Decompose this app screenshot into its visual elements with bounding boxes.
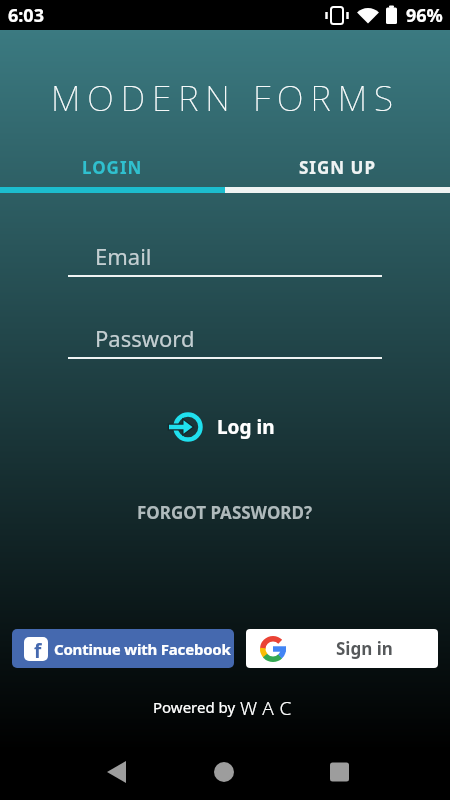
button[interactable]: Sign in xyxy=(246,629,438,668)
staticText: FORGOT PASSWORD? xyxy=(137,501,313,524)
button[interactable]: Log in xyxy=(165,405,275,449)
staticText: Password xyxy=(95,323,195,353)
button[interactable]: f xyxy=(12,629,234,668)
button[interactable]: Email xyxy=(68,241,382,277)
staticText: 96% xyxy=(406,3,443,28)
staticText: SIGN UP xyxy=(299,156,376,179)
button[interactable] xyxy=(0,750,150,800)
button[interactable]: SIGN UP xyxy=(225,147,450,187)
staticText: LOGIN xyxy=(82,156,143,179)
button[interactable]: LOGIN xyxy=(0,147,225,187)
button[interactable] xyxy=(300,750,450,800)
staticText: MODERN FORMS xyxy=(51,74,400,118)
staticText: f xyxy=(34,638,42,661)
button[interactable]: Password xyxy=(68,323,382,359)
staticText: WAC xyxy=(240,695,298,719)
staticText: Powered by xyxy=(153,697,240,717)
staticText: Email xyxy=(95,241,152,271)
staticText: Sign in xyxy=(336,637,393,660)
staticText: Continue with Facebook xyxy=(54,639,231,659)
button[interactable]: FORGOT PASSWORD? xyxy=(0,499,450,525)
staticText: Log in xyxy=(217,414,275,440)
staticText: 6:03 xyxy=(8,3,44,28)
button[interactable] xyxy=(150,750,300,800)
